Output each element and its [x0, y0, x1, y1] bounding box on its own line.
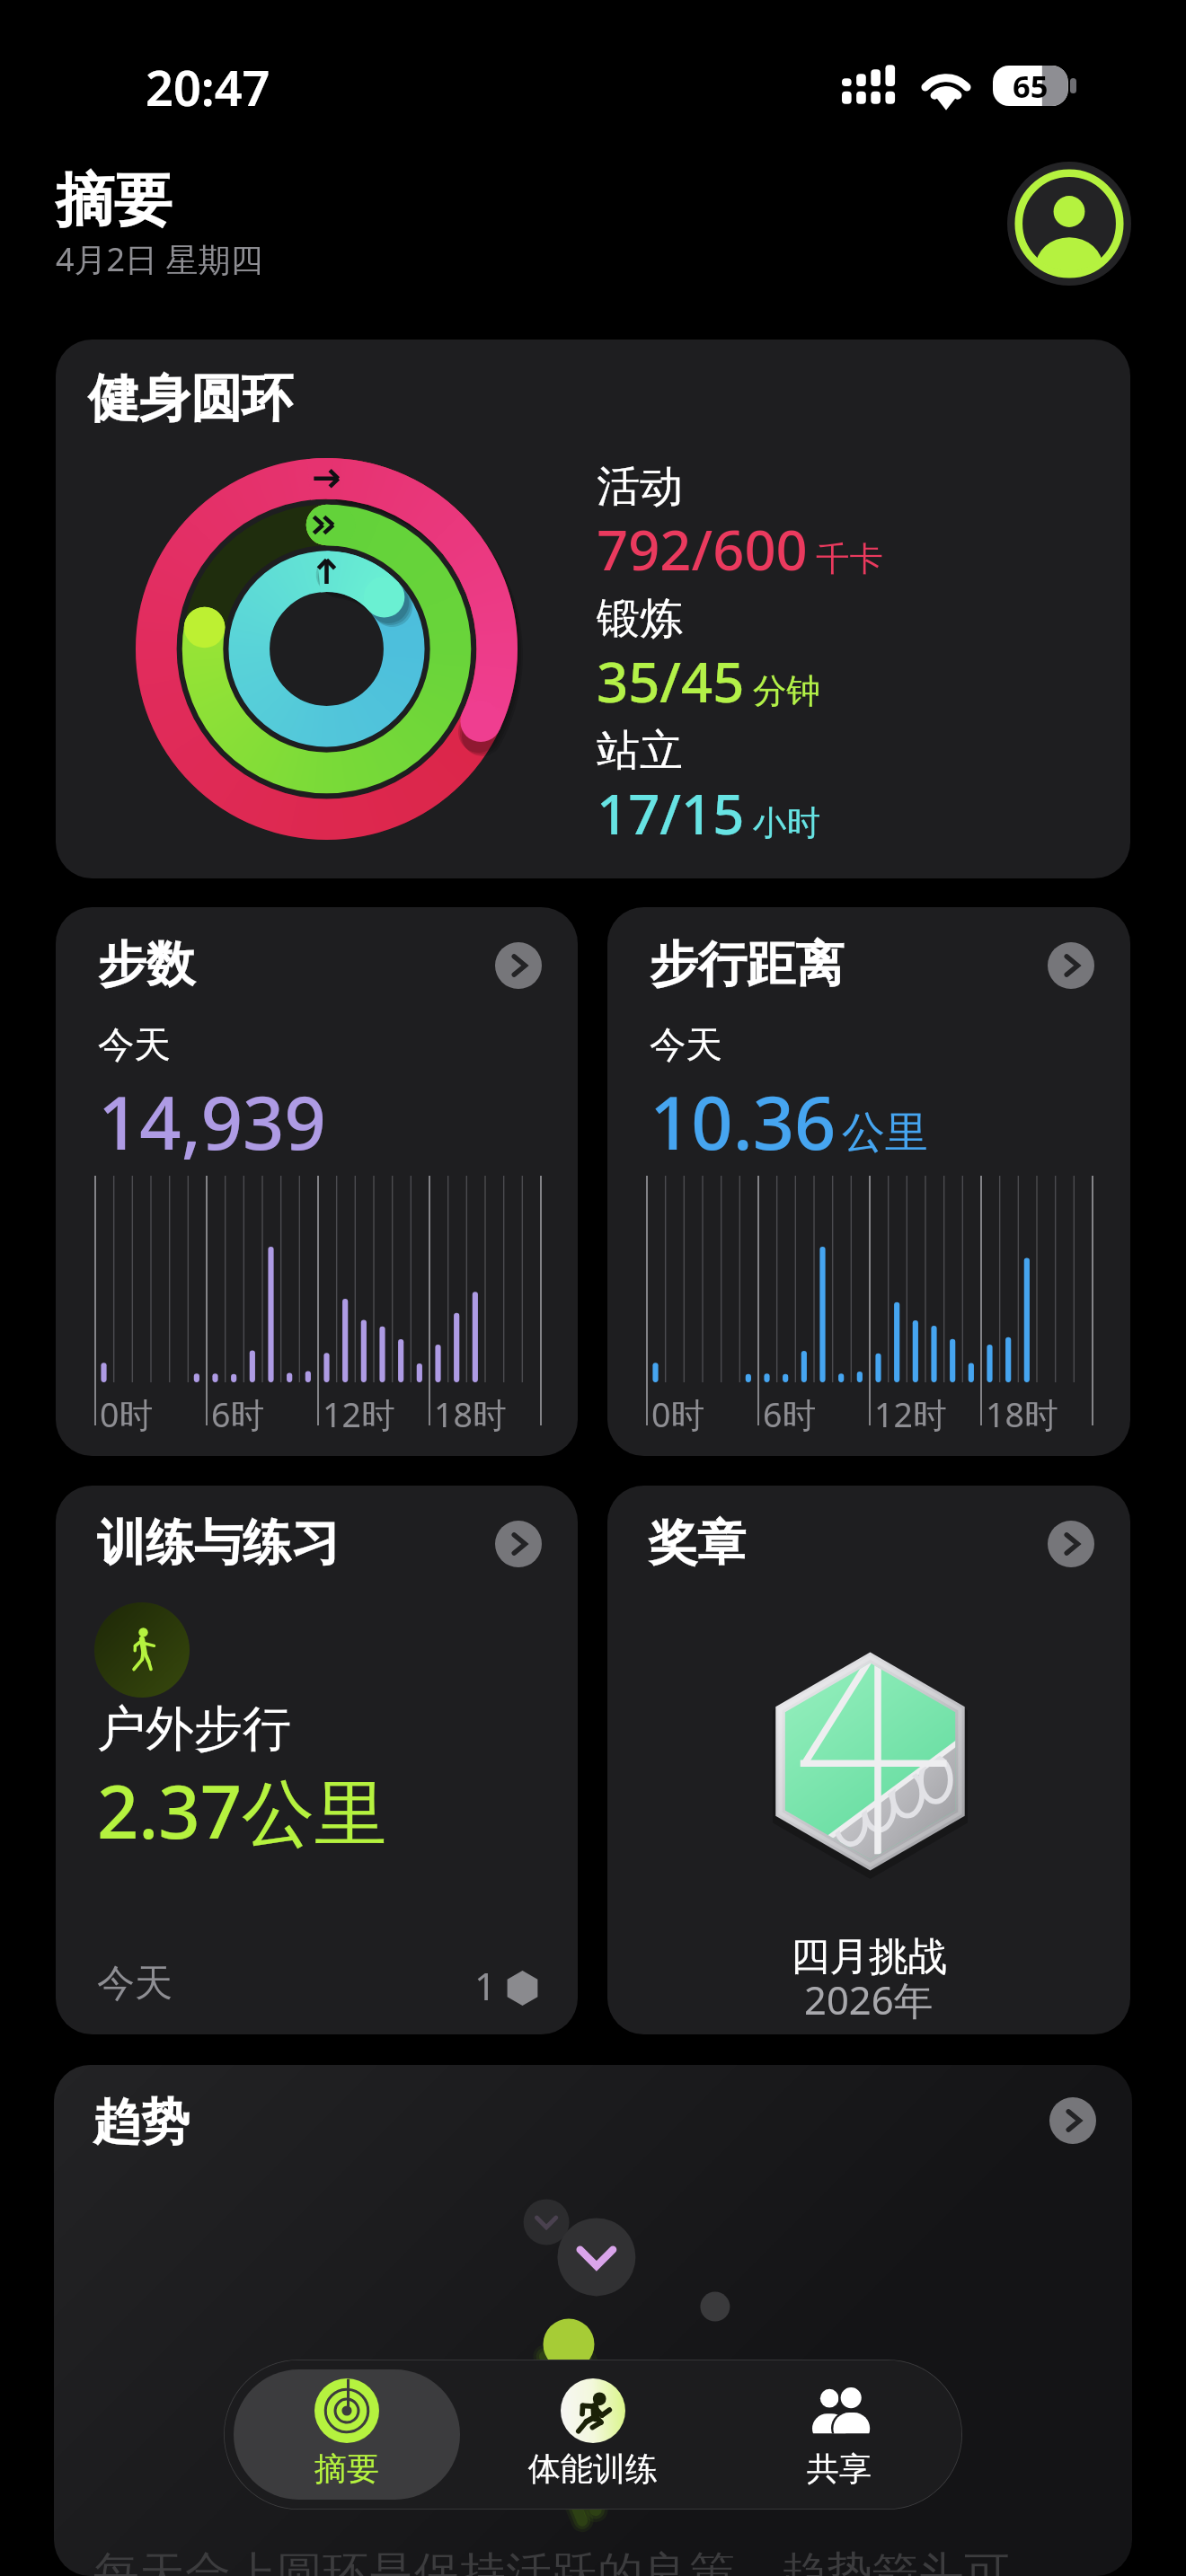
staticText: 14,939 [98, 1072, 326, 1170]
staticText: 共享 [807, 2448, 872, 2489]
staticText: 18时 [986, 1391, 1058, 1437]
staticText: 步行距离 [650, 934, 844, 995]
staticText: 6时 [763, 1391, 816, 1437]
staticText: 步数 [98, 934, 195, 995]
staticText: 10.36 [650, 1072, 836, 1170]
staticText: 35/45 [597, 643, 745, 719]
staticText: 65 [1013, 65, 1049, 105]
staticText: 摘要 [56, 164, 172, 237]
button[interactable]: 体能训练 [480, 2369, 706, 2500]
staticText: 12时 [323, 1391, 395, 1437]
staticText: 训练与练习 [97, 1513, 340, 1574]
staticText: 17/15 [597, 775, 745, 851]
staticText: 今天 [97, 1960, 173, 2007]
staticText: 趋势 [93, 2092, 190, 2153]
staticText: 今天 [98, 1022, 171, 1068]
button[interactable]: 步行距离 [607, 907, 1130, 1456]
staticText: 1 [474, 1960, 497, 2011]
button[interactable]: 步数 [56, 907, 578, 1456]
staticText: 分钟 [753, 670, 820, 712]
button[interactable]: Open details [1048, 1521, 1094, 1567]
staticText: 0时 [100, 1391, 153, 1437]
staticText: 12时 [874, 1391, 947, 1437]
staticText: 6时 [211, 1391, 264, 1437]
staticText: 锻炼 [597, 592, 683, 646]
button[interactable]: Profile [1007, 162, 1131, 286]
staticText: 792/600 [597, 511, 808, 587]
button[interactable]: Open details [1049, 2097, 1096, 2144]
staticText: 摘要 [314, 2448, 379, 2489]
staticText: 活动 [597, 460, 683, 514]
button[interactable]: 摘要 [234, 2369, 460, 2500]
button[interactable]: Open details [495, 942, 542, 989]
staticText: 千卡 [816, 538, 883, 580]
button[interactable]: 训练与练习 [56, 1486, 578, 2034]
button[interactable]: Open details [1048, 942, 1094, 989]
staticText: 2026年 [804, 1972, 934, 2025]
staticText: 户外步行 [97, 1698, 291, 1760]
staticText: 站立 [597, 724, 683, 778]
staticText: 20:47 [146, 54, 270, 120]
staticText: 健身圆环 [88, 366, 293, 431]
button[interactable]: 健身圆环 [56, 340, 1130, 878]
staticText: 今天 [650, 1022, 722, 1068]
staticText: 18时 [434, 1391, 507, 1437]
button[interactable]: 共享 [726, 2369, 952, 2500]
staticText: 体能训练 [528, 2448, 658, 2489]
staticText: 四月挑战 [791, 1932, 947, 1981]
staticText: 0时 [651, 1391, 704, 1437]
button[interactable]: Open details [495, 1521, 542, 1567]
button[interactable]: 趋势 [54, 2065, 1132, 2576]
staticText: 每天合上圆环是保持活跃的良策。趋势箭头可 [93, 2545, 1010, 2576]
staticText: 2.37公里 [97, 1760, 388, 1860]
staticText: 小时 [753, 802, 820, 844]
button[interactable]: 奖章 [607, 1486, 1130, 2034]
staticText: 4月2日 星期四 [56, 237, 263, 281]
staticText: 奖章 [649, 1513, 746, 1574]
staticText: 公里 [842, 1106, 928, 1160]
